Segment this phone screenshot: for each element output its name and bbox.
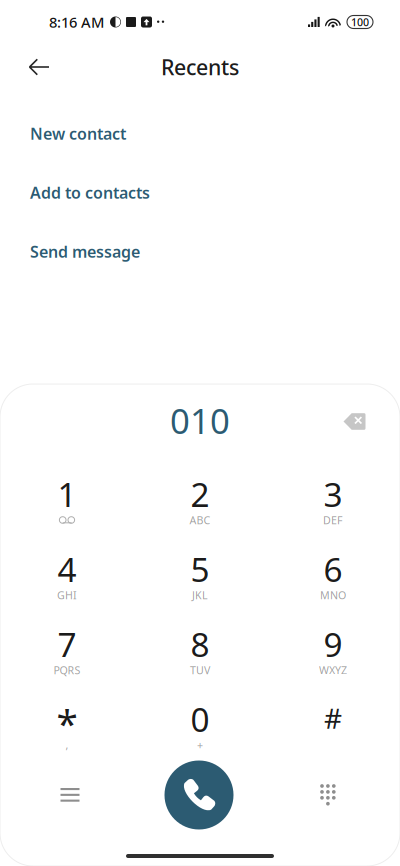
button[interactable]: 6 (266, 542, 399, 617)
button[interactable]: 2 (133, 467, 266, 542)
staticText: WXYZ (319, 663, 347, 677)
button[interactable]: 3 (266, 467, 399, 542)
button[interactable]: 0 (133, 692, 266, 767)
button[interactable]: 8 (133, 617, 266, 692)
staticText: 6 (323, 547, 342, 591)
staticText: 5 (190, 547, 209, 591)
button[interactable]: 4 (0, 542, 133, 617)
staticText: Add to contacts (30, 182, 150, 203)
button[interactable]: 9 (266, 617, 399, 692)
staticText: , (65, 738, 68, 752)
staticText: 3 (323, 472, 342, 516)
staticText: * (56, 697, 77, 749)
staticText: 8:16 AM (49, 12, 104, 32)
staticText: GHI (57, 588, 77, 602)
button[interactable]: Call log (26, 767, 114, 823)
staticText: DEF (323, 513, 343, 527)
staticText: 9 (323, 622, 342, 666)
button[interactable]: Send message (30, 222, 400, 281)
staticText: 7 (57, 622, 76, 666)
staticText: 4 (57, 547, 76, 591)
staticText: TUV (190, 663, 210, 677)
button[interactable]: 5 (133, 542, 266, 617)
button[interactable]: Delete (332, 403, 378, 447)
staticText: 8 (190, 622, 209, 666)
staticText: # (324, 699, 342, 737)
button[interactable]: 1 (0, 467, 133, 542)
button[interactable]: 7 (0, 617, 133, 692)
button[interactable]: Back (16, 45, 62, 89)
button[interactable]: Keypad (284, 767, 372, 823)
staticText: PQRS (53, 663, 80, 677)
button[interactable]: # (266, 692, 399, 767)
staticText: + (197, 738, 203, 752)
staticText: Recents (161, 53, 239, 81)
staticText: Send message (30, 241, 140, 262)
staticText: 100 (351, 15, 369, 29)
button[interactable]: New contact (30, 104, 400, 163)
staticText: ABC (189, 513, 210, 527)
button[interactable]: Add to contacts (30, 163, 400, 222)
staticText: 010 (170, 397, 230, 443)
staticText: MNO (320, 588, 346, 602)
staticText: JKL (192, 588, 208, 602)
staticText: New contact (30, 123, 126, 144)
staticText: 0 (190, 697, 209, 741)
staticText: 2 (190, 472, 209, 516)
staticText: 1 (57, 472, 76, 516)
button[interactable]: Call (155, 767, 243, 823)
button[interactable]: * (0, 692, 133, 767)
